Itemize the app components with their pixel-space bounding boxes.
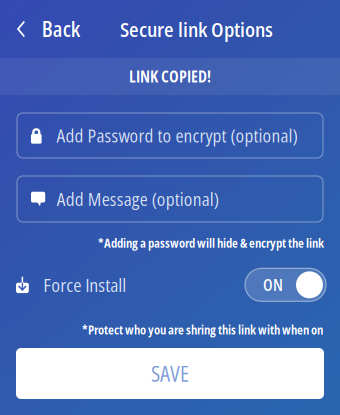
staticText: Add Message (optional) [57,187,219,211]
button[interactable]: Add Password to encrypt (optional) [17,113,323,158]
staticText: Add Password to encrypt (optional) [57,123,298,148]
staticText: *Adding a password will hide & encrypt t… [98,235,324,251]
staticText: ON [263,274,283,295]
staticText: Back [42,15,81,43]
button[interactable]: SAVE [0,348,340,399]
staticText: Secure link Options [120,15,273,43]
button[interactable]: Back [0,3,81,55]
button[interactable]: Add Message (optional) [17,176,323,222]
staticText: *Protect who you are shring this link wi… [82,322,323,338]
button[interactable]: Force Install toggle [245,268,326,301]
staticText: SAVE [151,359,189,388]
staticText: LINK COPIED! [129,66,211,87]
staticText: Force Install [43,272,126,297]
